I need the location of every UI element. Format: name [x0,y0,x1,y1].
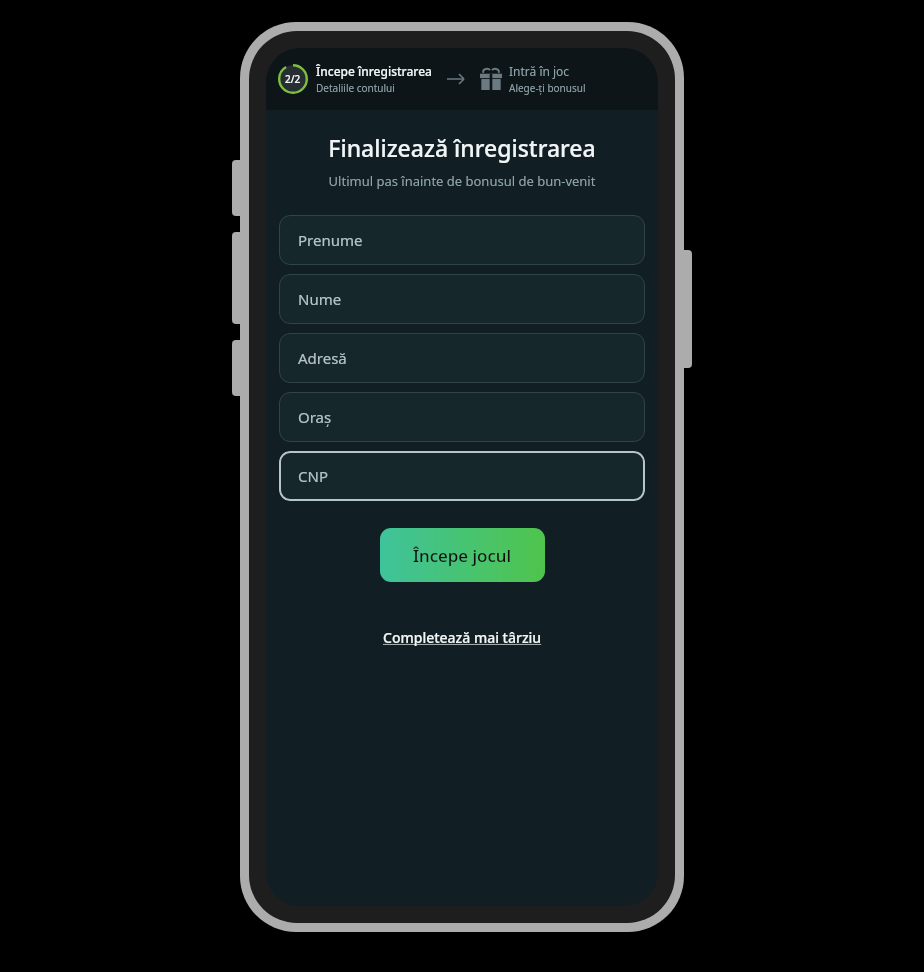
other: Power [680,250,692,368]
other: Volume up [232,160,244,216]
button[interactable]: Nume [279,274,645,324]
staticText: CNP [298,466,328,486]
staticText: Nume [298,289,342,309]
button[interactable]: Prenume [279,215,645,265]
staticText: Ultimul pas înainte de bonusul de bun-ve… [266,172,658,190]
other: Gift bonus [480,68,502,90]
staticText: Alege-ți bonusul [509,81,586,95]
staticText: Prenume [298,230,363,250]
staticText: Începe înregistrarea [316,63,432,79]
button[interactable]: Completează mai târziu [375,622,550,653]
other: Silent switch [232,340,244,396]
staticText: Completează mai târziu [383,628,542,647]
staticText: 2/2 [285,72,301,86]
staticText: Detaliile contului [316,81,395,95]
staticText: Finalizează înregistrarea [266,132,658,163]
button[interactable]: Adresă [279,333,645,383]
staticText: Începe jocul [413,544,512,567]
other: Next step [446,72,466,86]
button[interactable]: Începe jocul [380,528,545,582]
other: Volume down [232,232,244,324]
button[interactable]: Oraș [279,392,645,442]
button[interactable]: CNP [279,451,645,501]
staticText: Intră în joc [509,63,570,79]
staticText: Adresă [298,348,347,368]
staticText: Oraș [298,407,332,427]
